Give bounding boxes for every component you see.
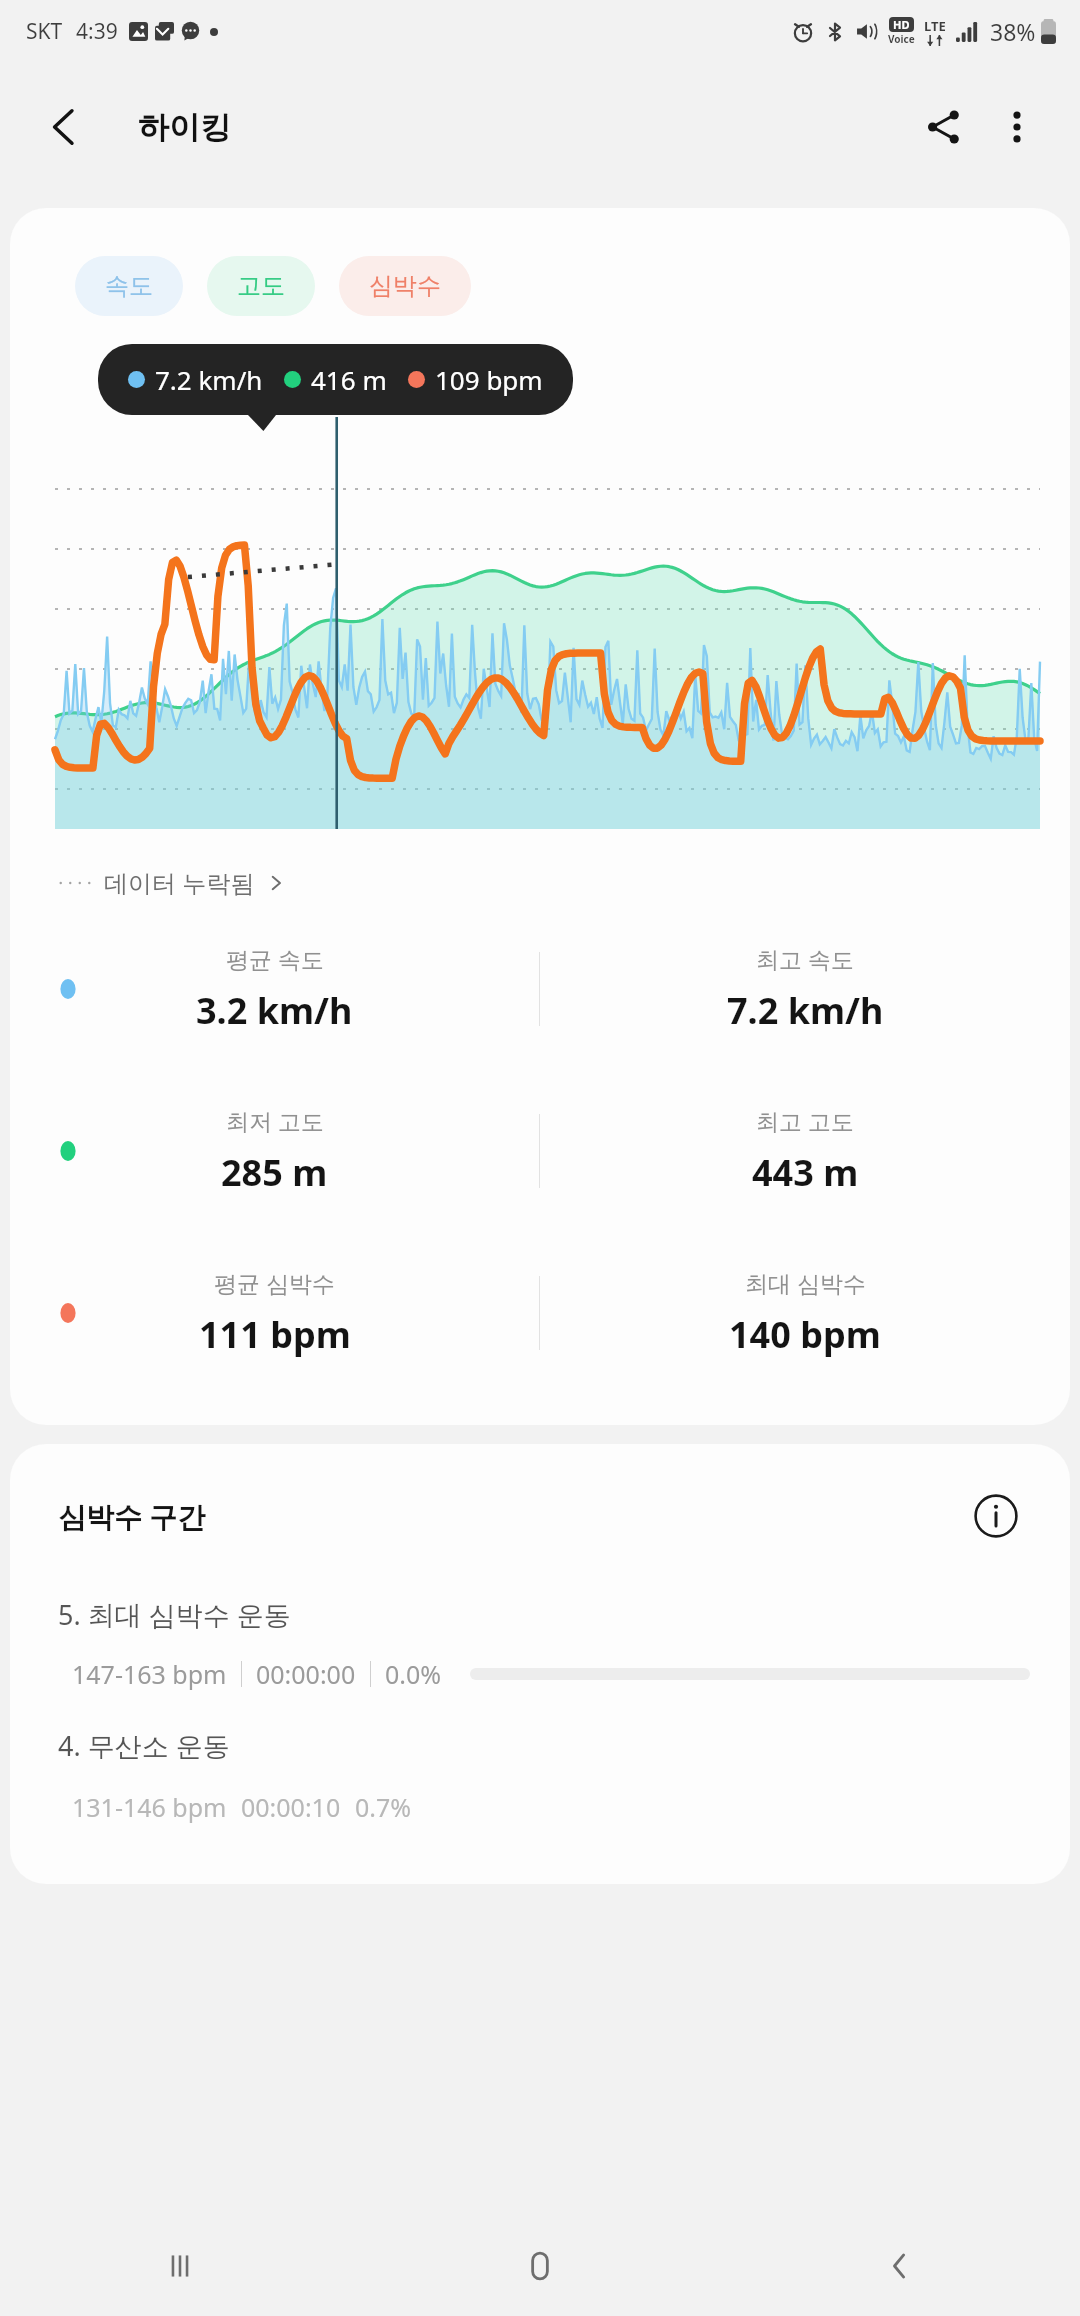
staticText: 3.2 km/h [196,986,353,1035]
staticText: 147-163 bpm [72,1657,227,1691]
staticText: 4. 무산소 운동 [58,1727,230,1764]
staticText: 심박수 [369,271,441,301]
button[interactable]: Recent apps [0,2216,360,2316]
button[interactable]: 심박수 [339,256,471,316]
staticText: SKT [26,17,63,46]
staticText: 고도 [237,271,285,301]
staticText: 최대 심박수 [745,1267,866,1298]
staticText: 109 bpm [435,362,543,397]
staticText: 7.2 km/h [155,362,263,397]
staticText: 285 m [221,1148,328,1197]
staticText: 평균 속도 [226,943,324,974]
button[interactable]: Back [720,2216,1080,2316]
button[interactable]: Home [360,2216,720,2316]
staticText: 심박수 구간 [58,1497,206,1535]
staticText: LTE [924,17,946,35]
staticText: 131-146 bpm [72,1790,227,1824]
staticText: 데이터 누락됨 [104,866,255,899]
staticText: 111 bpm [199,1310,351,1359]
button[interactable]: Back [36,98,94,156]
staticText: 140 bpm [729,1310,881,1359]
staticText: 최저 고도 [226,1105,324,1136]
staticText: 443 m [752,1148,859,1197]
button[interactable]: 속도 [75,256,183,316]
button[interactable]: Share [906,90,980,164]
staticText: Voice [888,32,915,46]
button[interactable]: More options [980,90,1054,164]
staticText: 하이킹 [138,108,231,147]
button[interactable]: Info [970,1490,1022,1542]
staticText: HD [893,17,910,32]
staticText: 최고 고도 [756,1105,854,1136]
staticText: 416 m [311,362,387,397]
staticText: 7.2 km/h [727,986,884,1035]
staticText: 속도 [105,271,153,301]
staticText: 평균 심박수 [214,1267,335,1298]
staticText: 38% [990,16,1036,47]
button[interactable]: 데이터 누락됨 [58,866,287,899]
staticText: 00:00:00 [256,1657,356,1691]
button[interactable]: 고도 [207,256,315,316]
staticText: 4:39 [76,17,118,46]
staticText: 00:00:10 [241,1790,341,1824]
staticText: 5. 최대 심박수 운동 [58,1596,291,1633]
staticText: 0.7% [355,1790,412,1824]
staticText: 0.0% [385,1657,442,1691]
staticText: 최고 속도 [756,943,854,974]
